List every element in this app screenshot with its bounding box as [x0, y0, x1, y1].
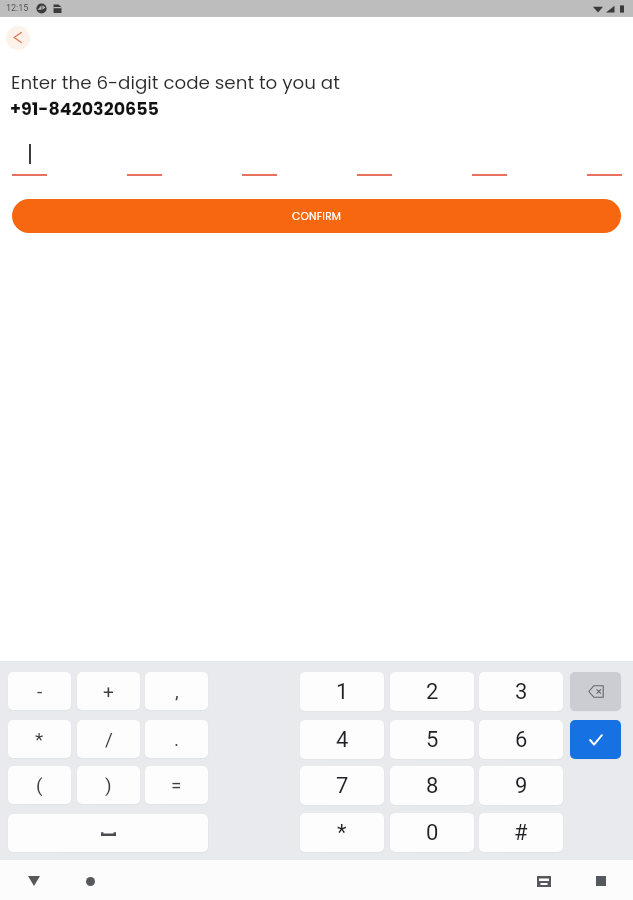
button[interactable]: Key *	[8, 720, 71, 758]
staticText: 8	[426, 773, 439, 799]
button[interactable]: Back	[6, 26, 30, 50]
button[interactable]: OTP digit 6	[587, 140, 622, 178]
staticText: Enter the 6-digit code sent to you at	[11, 70, 340, 96]
staticText: #	[514, 820, 528, 846]
staticText: 1	[336, 679, 349, 705]
staticText: *	[35, 728, 44, 750]
staticText: +91-8420320655	[10, 97, 159, 122]
button[interactable]: Switch keyboard	[531, 868, 557, 894]
staticText: /	[105, 728, 113, 750]
staticText: 12:15	[6, 3, 29, 14]
staticText: +	[103, 680, 114, 702]
button[interactable]: Key #	[479, 813, 563, 852]
button[interactable]: Key *	[300, 813, 384, 852]
button[interactable]: Key 9	[479, 766, 563, 805]
button[interactable]: Key )	[77, 766, 140, 804]
button[interactable]: OTP digit 5	[472, 140, 507, 178]
staticText: 5	[426, 727, 439, 753]
staticText: 0	[426, 820, 439, 846]
button[interactable]: Key 7	[300, 766, 384, 805]
button[interactable]: OTP digit 3	[242, 140, 277, 178]
staticText: 3	[515, 679, 528, 705]
button[interactable]: Space	[8, 814, 208, 852]
staticText: 9	[515, 773, 528, 799]
staticText: (	[36, 774, 43, 796]
button[interactable]: OTP digit 4	[357, 140, 392, 178]
button[interactable]: Key 6	[479, 720, 563, 759]
button[interactable]: Key 2	[390, 672, 474, 711]
button[interactable]: Key 4	[300, 720, 384, 759]
button[interactable]: OTP digit 1	[12, 140, 47, 178]
button[interactable]: Key 8	[390, 766, 474, 805]
staticText: CONFIRM	[292, 209, 342, 224]
button[interactable]: Key -	[8, 672, 71, 710]
staticText: 7	[336, 773, 349, 799]
staticText: =	[171, 774, 182, 796]
staticText: 6	[515, 727, 528, 753]
button[interactable]: Back	[21, 868, 47, 894]
staticText: .	[174, 728, 180, 750]
button[interactable]: Key +	[77, 672, 140, 710]
button[interactable]: OTP digit 2	[127, 140, 162, 178]
button[interactable]: Recent apps	[588, 868, 614, 894]
button[interactable]: Key ,	[145, 672, 208, 710]
button[interactable]: Key 0	[390, 813, 474, 852]
staticText: *	[337, 820, 347, 846]
button[interactable]: Key 3	[479, 672, 563, 711]
button[interactable]: Key /	[77, 720, 140, 758]
staticText: ,	[175, 680, 179, 702]
button[interactable]: Done	[570, 720, 621, 759]
button[interactable]: Home	[77, 868, 103, 894]
staticText: -	[37, 680, 43, 702]
button[interactable]: Key 1	[300, 672, 384, 711]
button[interactable]: Key =	[145, 766, 208, 804]
button[interactable]: CONFIRM	[12, 199, 621, 233]
button[interactable]: Key 5	[390, 720, 474, 759]
staticText: 2	[426, 679, 439, 705]
staticText: 4	[336, 727, 349, 753]
button[interactable]: Backspace	[570, 672, 621, 711]
staticText: )	[105, 774, 112, 796]
button[interactable]: Key (	[8, 766, 71, 804]
button[interactable]: Key .	[145, 720, 208, 758]
